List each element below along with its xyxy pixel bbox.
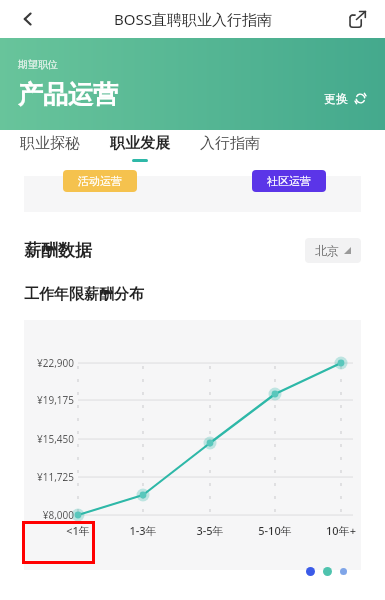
staticText: 社区运营 [267,174,311,188]
staticText: 北京 [315,243,339,258]
staticText: ¥22,900 [24,356,74,370]
staticText: 10年+ [313,523,369,538]
staticText: 5-10年 [247,523,303,538]
staticText: 3-5年 [182,523,238,538]
staticText: 期望职位 [18,58,58,71]
staticText: <1年 [50,523,106,538]
staticText: BOSS直聘职业入行指南 [114,9,272,29]
staticText: ¥8,000 [24,508,74,522]
button[interactable]: 职业发展 [108,130,172,166]
staticText: 工作年限薪酬分布 [24,285,144,304]
button[interactable]: Back [10,1,46,37]
button[interactable]: 更换 [320,87,371,110]
staticText: 职业探秘 [20,134,80,153]
button[interactable]: 社区运营 [252,170,326,192]
button[interactable]: 活动运营 [63,170,137,192]
staticText: 1-3年 [115,523,171,538]
staticText: 入行指南 [200,134,260,153]
staticText: ¥11,725 [24,470,74,484]
staticText: 薪酬数据 [24,240,92,261]
button[interactable]: 北京 [305,238,361,263]
staticText: 更换 [324,91,348,106]
button[interactable]: 入行指南 [198,130,262,166]
staticText: ¥19,175 [24,393,74,407]
button[interactable]: 职业探秘 [18,130,82,166]
button[interactable]: Share [339,1,375,37]
staticText: 职业发展 [110,134,170,153]
staticText: 产品运营 [18,79,118,110]
staticText: ¥15,450 [24,432,74,446]
staticText: 活动运营 [78,174,122,188]
